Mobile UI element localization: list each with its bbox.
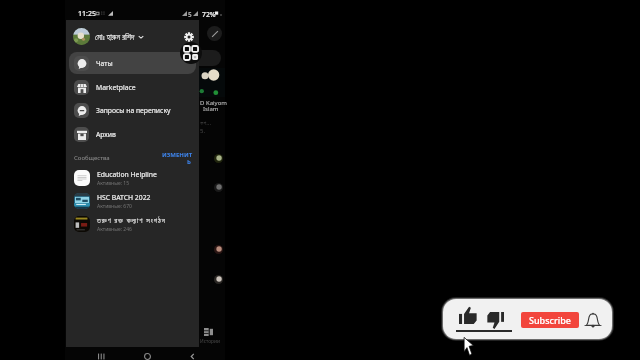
- button[interactable]: Back: [187, 351, 198, 360]
- button[interactable]: Запросы на переписку: [69, 99, 196, 121]
- button[interactable]: ИЗМЕНИТ: [162, 151, 196, 167]
- staticText: 72%: [202, 10, 216, 19]
- button[interactable]: Settings: [182, 30, 196, 44]
- staticText: 5: [188, 10, 192, 19]
- staticText: কগ...: [200, 119, 212, 127]
- button[interactable]: HSC BATCH 2022: [69, 190, 196, 212]
- staticText: Активные: 246: [97, 226, 132, 233]
- staticText: 5.: [200, 127, 206, 135]
- button[interactable]: Чаты: [69, 52, 196, 74]
- staticText: মোঃ হারুন রশিদ: [95, 31, 135, 42]
- staticText: 11:25: [78, 9, 96, 19]
- staticText: Education Helpline: [97, 170, 157, 179]
- button[interactable]: Like: [457, 304, 479, 326]
- button[interactable]: Notifications: [585, 312, 601, 328]
- button[interactable]: App grid: [180, 42, 202, 64]
- button[interactable]: Marketplace: [69, 76, 196, 98]
- staticText: তরুণ রক্ত কল্যাণ সংগঠন: [97, 216, 166, 225]
- staticText: Subscribe: [529, 314, 571, 326]
- staticText: HSC BATCH 2022: [97, 193, 151, 202]
- staticText: D Kaiyom: [200, 99, 227, 107]
- staticText: Сообщества: [74, 154, 110, 162]
- staticText: Чаты: [96, 59, 113, 68]
- button[interactable]: Dislike: [484, 309, 506, 331]
- staticText: Islam: [203, 105, 219, 113]
- button[interactable]: Архив: [69, 123, 196, 145]
- button[interactable]: Recents: [96, 351, 107, 360]
- staticText: Запросы на переписку: [96, 106, 171, 115]
- staticText: Marketplace: [96, 83, 136, 92]
- staticText: Ь: [187, 158, 191, 166]
- staticText: Активные: 670: [97, 203, 132, 210]
- staticText: Истории: [200, 338, 220, 345]
- staticText: ИЗМЕНИТ: [162, 151, 193, 159]
- button[interactable]: New message: [207, 26, 222, 41]
- button[interactable]: Home: [142, 351, 153, 360]
- staticText: Архив: [96, 130, 116, 139]
- button[interactable]: [73, 28, 90, 45]
- button[interactable]: Education Helpline: [69, 167, 196, 189]
- staticText: Активные: 15: [97, 180, 130, 187]
- button[interactable]: Subscribe: [521, 312, 579, 328]
- button[interactable]: তরুণ রক্ত কল্যাণ সংগঠন: [69, 213, 196, 235]
